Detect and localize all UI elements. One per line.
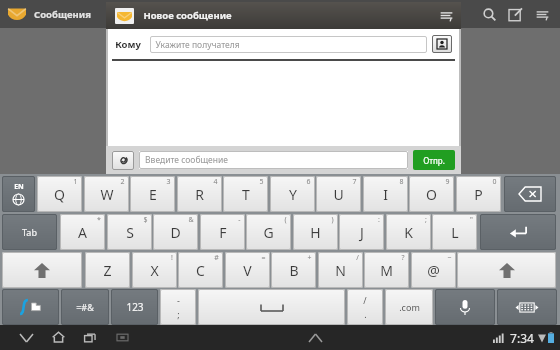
staticText: I (383, 185, 388, 204)
button[interactable]: 8 (363, 176, 408, 212)
button[interactable]: # (178, 252, 223, 288)
button[interactable]: * (60, 214, 105, 250)
staticText: S (126, 223, 134, 242)
staticText: J (360, 223, 364, 242)
button[interactable]: Handwriting (2, 289, 59, 325)
button[interactable]: Shift (2, 252, 82, 288)
button[interactable]: Hide keyboard (497, 289, 557, 325)
staticText: Tab (22, 226, 37, 238)
button[interactable]: Отпр. (413, 150, 455, 170)
staticText: W (100, 185, 114, 204)
staticText: 123 (126, 300, 144, 314)
button[interactable]: - (200, 214, 245, 250)
staticText: " (470, 215, 473, 225)
button[interactable]: .com (385, 289, 433, 325)
button[interactable]: ! (132, 252, 177, 288)
staticText: Новое сообщение (143, 9, 232, 22)
staticText: $ (143, 215, 148, 225)
staticText: .com (399, 301, 420, 313)
button[interactable]: Home (42, 325, 74, 350)
staticText: 2 (120, 177, 125, 187)
button[interactable]: ( (246, 214, 291, 250)
button[interactable]: 2 (84, 176, 129, 212)
staticText: V (243, 261, 252, 280)
staticText: Кому (115, 38, 141, 51)
button[interactable]: =#& (61, 289, 109, 325)
button[interactable]: Введите сообщение (139, 151, 408, 169)
button[interactable]: Enter (480, 214, 556, 250)
staticText: U (333, 185, 344, 204)
button[interactable]: Shift (457, 252, 556, 288)
button[interactable]: ~ (411, 252, 456, 288)
staticText: * (97, 215, 101, 225)
staticText: & (188, 215, 194, 225)
button[interactable]: Z (85, 252, 130, 288)
staticText: X (150, 261, 159, 280)
button[interactable]: Back (10, 325, 42, 350)
button[interactable]: Screenshot (106, 325, 138, 350)
button[interactable]: 9 (409, 176, 454, 212)
button[interactable]: Recents (74, 325, 106, 350)
button[interactable]: $ (107, 214, 152, 250)
button[interactable]: / (318, 252, 363, 288)
button[interactable]: Search (476, 0, 502, 28)
staticText: ! (171, 253, 173, 263)
button[interactable]: 1 (37, 176, 82, 212)
staticText: 7:34 (510, 330, 534, 346)
button[interactable]: Menu (528, 0, 556, 28)
staticText: K (404, 223, 413, 242)
button[interactable]: 6 (270, 176, 315, 212)
button[interactable]: New message (502, 0, 528, 28)
staticText: P (474, 185, 483, 204)
button[interactable]: 123 (111, 289, 158, 325)
staticText: G (263, 223, 274, 242)
button[interactable]: Change language (2, 176, 35, 212)
staticText: / (363, 294, 367, 306)
button[interactable]: Menu (431, 2, 461, 29)
button[interactable]: Contacts (432, 35, 452, 53)
staticText: = (261, 253, 266, 263)
button[interactable]: Tab (2, 214, 57, 250)
staticText: Отпр. (423, 155, 445, 166)
staticText: - (238, 215, 241, 225)
button[interactable]: : (339, 214, 384, 250)
button[interactable]: + (271, 252, 316, 288)
button[interactable]: Voice input (435, 289, 495, 325)
button[interactable]: / (347, 289, 383, 325)
staticText: 1 (73, 177, 78, 187)
staticText: - (177, 294, 180, 306)
button[interactable]: - (160, 289, 196, 325)
button[interactable]: 3 (130, 176, 175, 212)
staticText: Введите сообщение (145, 154, 228, 166)
button[interactable]: ) (293, 214, 338, 250)
staticText: 8 (399, 177, 404, 187)
button[interactable]: & (153, 214, 198, 250)
staticText: # (214, 253, 219, 263)
button[interactable]: ? (364, 252, 409, 288)
button[interactable]: Space (198, 289, 345, 325)
button[interactable]: 0 (456, 176, 501, 212)
button[interactable]: 4 (177, 176, 222, 212)
button[interactable]: 5 (223, 176, 268, 212)
staticText: @ (427, 261, 440, 280)
button[interactable]: ; (386, 214, 431, 250)
staticText: D (170, 223, 181, 242)
staticText: ( (284, 215, 287, 225)
button[interactable]: " (432, 214, 477, 250)
staticText: . (364, 308, 367, 320)
staticText: Z (103, 261, 112, 280)
staticText: R (195, 185, 204, 204)
staticText: 4 (213, 177, 218, 187)
button[interactable]: = (225, 252, 270, 288)
staticText: A (78, 223, 87, 242)
button[interactable]: Укажите получателя (150, 36, 427, 53)
button[interactable]: Attach (112, 151, 134, 170)
staticText: 7 (352, 177, 357, 187)
button[interactable]: Backspace (504, 176, 556, 212)
staticText: E (149, 185, 157, 204)
staticText: 6 (306, 177, 311, 187)
staticText: Укажите получателя (155, 39, 240, 51)
button[interactable]: 7 (316, 176, 361, 212)
staticText: L (451, 223, 459, 242)
